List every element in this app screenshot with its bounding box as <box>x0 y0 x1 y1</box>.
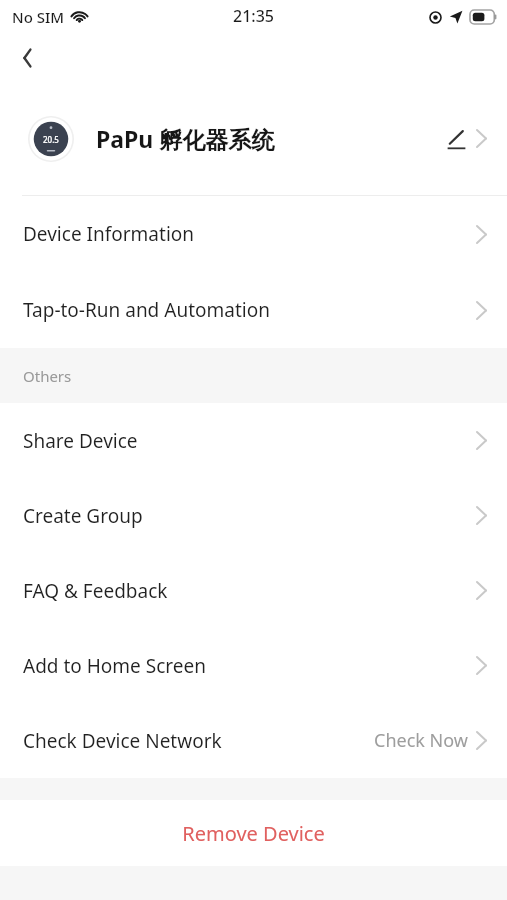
staticText: No SIM <box>12 7 65 27</box>
staticText: Check Now <box>374 728 468 753</box>
button[interactable]: FAQ & Feedback <box>0 553 507 628</box>
staticText: Share Device <box>23 428 138 454</box>
button[interactable]: Add to Home Screen <box>0 628 507 703</box>
button[interactable]: Check Device Network <box>0 703 507 778</box>
staticText: Remove Device <box>182 820 325 847</box>
button[interactable]: Remove Device <box>0 800 507 866</box>
button[interactable]: Rename device <box>440 123 472 155</box>
button[interactable]: 20.5 <box>0 82 507 195</box>
staticText: Others <box>23 366 72 386</box>
staticText: Create Group <box>23 503 143 529</box>
staticText: 20.5 <box>43 134 59 145</box>
button[interactable]: Share Device <box>0 403 507 478</box>
staticText: 21:35 <box>233 5 274 27</box>
button[interactable]: Device Information <box>0 196 507 272</box>
staticText: Check Device Network <box>23 728 222 754</box>
button[interactable]: Create Group <box>0 478 507 553</box>
staticText: PaPu 孵化器系统 <box>96 123 275 154</box>
button[interactable]: Back <box>10 40 46 76</box>
staticText: Add to Home Screen <box>23 653 206 679</box>
staticText: Device Information <box>23 221 195 247</box>
staticText: Tap-to-Run and Automation <box>23 297 270 323</box>
staticText: FAQ & Feedback <box>23 578 168 604</box>
button[interactable]: Tap-to-Run and Automation <box>0 272 507 348</box>
